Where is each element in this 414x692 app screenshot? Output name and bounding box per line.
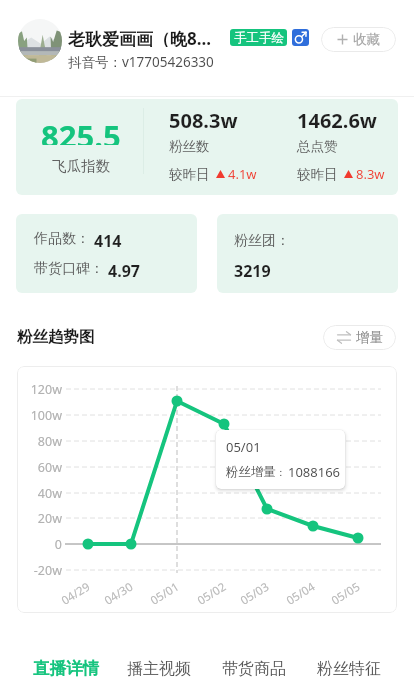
button[interactable]: 带货商品 [210, 645, 298, 692]
staticText: 手工手绘 [234, 30, 284, 46]
staticText: 4.1w [228, 165, 257, 183]
staticText: 飞瓜指数 [52, 157, 110, 175]
staticText: 05/03 [237, 579, 272, 609]
button[interactable]: Avatar [18, 19, 62, 63]
staticText: 粉丝趋势图 [17, 327, 95, 347]
staticText: 20w [37, 510, 62, 527]
staticText: 增量 [356, 329, 383, 346]
staticText: 100w [30, 407, 62, 424]
staticText: -20w [33, 562, 62, 579]
staticText: 05/02 [194, 579, 229, 609]
other: Male [292, 29, 309, 46]
staticText: 414 [94, 230, 122, 248]
button[interactable]: 增量 [323, 325, 396, 350]
button[interactable]: 粉丝特征 [305, 645, 393, 692]
staticText: 04/30 [101, 579, 136, 609]
button[interactable]: 收藏 [321, 27, 396, 52]
staticText: 作品数： [34, 230, 90, 248]
staticText: 播主视频 [127, 659, 191, 679]
button[interactable]: 直播详情 [22, 645, 110, 692]
staticText: 粉丝增量 [226, 464, 276, 480]
staticText: 直播详情 [33, 658, 99, 679]
staticText: 05/01 [226, 438, 261, 456]
staticText: 60w [37, 459, 62, 476]
staticText: 粉丝团： [234, 232, 290, 250]
staticText: 较昨日 [297, 166, 338, 183]
staticText: 3219 [234, 260, 271, 278]
staticText: 粉丝数 [169, 138, 210, 155]
button[interactable]: 播主视频 [115, 645, 203, 692]
staticText: 总点赞 [297, 138, 338, 155]
staticText: ： [276, 466, 286, 479]
staticText: 05/04 [283, 579, 318, 609]
staticText: 1462.6w [297, 107, 377, 129]
staticText: 收藏 [353, 31, 380, 48]
staticText: 05/05 [328, 579, 363, 609]
staticText: 带货商品 [222, 659, 286, 679]
staticText: 抖音号：v17705426330 [68, 53, 214, 71]
staticText: 825.5 [41, 115, 121, 145]
staticText: 带货口碑： [34, 260, 104, 278]
staticText: 80w [37, 433, 62, 450]
staticText: 05/01 [147, 579, 182, 609]
staticText: 120w [30, 381, 62, 398]
staticText: 4.97 [108, 260, 140, 278]
staticText: 老耿爱画画（晚8... [68, 27, 212, 47]
staticText: 8.3w [356, 165, 385, 183]
staticText: 0 [54, 536, 62, 553]
staticText: 1088166 [288, 463, 341, 481]
staticText: 40w [37, 485, 62, 502]
staticText: 508.3w [169, 107, 238, 129]
staticText: 04/29 [58, 579, 93, 609]
staticText: 粉丝特征 [317, 659, 381, 679]
staticText: 较昨日 [169, 166, 210, 183]
